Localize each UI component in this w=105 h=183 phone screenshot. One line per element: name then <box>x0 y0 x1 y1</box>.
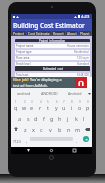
button[interactable]: Finish level <box>15 60 90 66</box>
staticText: Total cost <box>16 73 29 77</box>
button[interactable]: s <box>24 111 32 123</box>
staticText: h <box>58 115 62 122</box>
button[interactable]: 5 <box>44 99 52 111</box>
staticText: Project name <box>16 44 34 48</box>
staticText: Cost Estimate <box>28 31 50 35</box>
button[interactable]: h <box>56 111 64 123</box>
button[interactable]: Building Cost Estimator <box>11 19 92 31</box>
staticText: w <box>22 104 27 111</box>
staticText: test ad from AdMob. <box>13 83 48 88</box>
button[interactable]: c <box>37 123 46 135</box>
button[interactable]: Home <box>46 147 57 154</box>
button[interactable]: m <box>73 123 82 135</box>
staticText: . <box>76 138 78 144</box>
staticText: Project type <box>16 50 32 54</box>
button[interactable]: About <box>66 31 78 35</box>
button[interactable]: g <box>48 111 56 123</box>
staticText: About <box>67 31 77 35</box>
staticText: ?123 <box>13 139 21 144</box>
button[interactable]: Project name <box>15 42 90 48</box>
button[interactable]: n <box>64 123 73 135</box>
button[interactable]: android <box>11 88 37 99</box>
staticText: i <box>71 104 73 111</box>
staticText: ANDROID <box>41 91 58 96</box>
staticText: z <box>24 126 27 133</box>
staticText: 7 <box>63 100 65 104</box>
staticText: House extension <box>67 44 89 48</box>
staticText: j <box>67 115 69 122</box>
button[interactable]: a <box>15 111 24 123</box>
staticText: Android <box>68 91 82 96</box>
staticText: u <box>62 104 66 111</box>
button[interactable]: 8 <box>68 99 76 111</box>
button[interactable]: Report <box>52 31 65 35</box>
staticText: Project information <box>39 39 66 42</box>
button[interactable]: Enter <box>83 136 89 142</box>
staticText: q <box>14 104 18 111</box>
staticText: g <box>50 115 54 122</box>
staticText: 4:23 <box>81 14 90 19</box>
staticText: c <box>40 126 43 133</box>
button[interactable]: k <box>72 111 80 123</box>
staticText: t <box>47 104 49 111</box>
button[interactable]: Backspace <box>82 123 92 135</box>
button[interactable]: v <box>46 123 55 135</box>
staticText: b <box>58 126 62 133</box>
button[interactable]: Shift <box>11 123 21 135</box>
button[interactable]: Playstore <box>79 31 91 35</box>
button[interactable]: f <box>40 111 48 123</box>
button[interactable]: Android <box>62 88 87 99</box>
button[interactable]: , <box>23 135 30 147</box>
button[interactable]: x <box>29 123 37 135</box>
staticText: Standard <box>77 62 89 66</box>
button[interactable]: 3 <box>28 99 36 111</box>
button[interactable]: 9 <box>76 99 84 111</box>
button[interactable]: Back <box>23 147 34 154</box>
staticText: 8 <box>71 100 73 104</box>
staticText: 5 <box>47 100 49 104</box>
button[interactable]: 1 <box>11 99 20 111</box>
button[interactable]: Nice job! <box>11 77 92 88</box>
button[interactable]: Recent apps <box>69 147 80 154</box>
button[interactable]: 0 <box>84 99 92 111</box>
button[interactable]: Project type <box>15 48 90 54</box>
button[interactable]: 4 <box>36 99 44 111</box>
staticText: m <box>75 126 81 133</box>
button[interactable]: d <box>32 111 40 123</box>
staticText: 4 <box>40 100 42 104</box>
button[interactable]: ANDROID <box>37 88 62 99</box>
staticText: p <box>86 104 90 111</box>
button[interactable]: 7 <box>60 99 68 111</box>
button[interactable]: Project <box>12 31 26 35</box>
button[interactable]: z <box>21 123 29 135</box>
button[interactable]: j <box>64 111 72 123</box>
staticText: 120 sq m <box>77 56 89 60</box>
button[interactable]: Ad app icon <box>75 77 87 88</box>
staticText: 0 <box>87 100 89 104</box>
staticText: 1 <box>15 100 17 104</box>
staticText: r <box>39 104 42 111</box>
staticText: n <box>67 126 71 133</box>
staticText: android <box>17 91 31 96</box>
staticText: Finish level <box>16 62 31 66</box>
staticText: Playstore <box>80 31 90 35</box>
button[interactable]: More suggestions <box>87 88 92 99</box>
staticText: o <box>78 104 82 111</box>
button[interactable]: ?123 <box>11 135 23 147</box>
button[interactable]: Floor area <box>15 54 90 60</box>
staticText: Building Cost Estimator <box>13 21 85 30</box>
staticText: Estimated cost <box>43 67 63 71</box>
staticText: s <box>27 115 30 122</box>
staticText: y <box>55 104 58 111</box>
button[interactable]: Cost Estimate <box>27 31 51 35</box>
button[interactable]: l <box>80 111 88 123</box>
button[interactable]: 2 <box>20 99 28 111</box>
button[interactable]: Total cost <box>15 71 90 77</box>
button[interactable]: . <box>73 135 80 147</box>
button[interactable]: b <box>55 123 64 135</box>
button[interactable]: 6 <box>52 99 60 111</box>
staticText: 3 <box>31 100 33 104</box>
staticText: 9 <box>79 100 81 104</box>
staticText: k <box>75 115 78 122</box>
